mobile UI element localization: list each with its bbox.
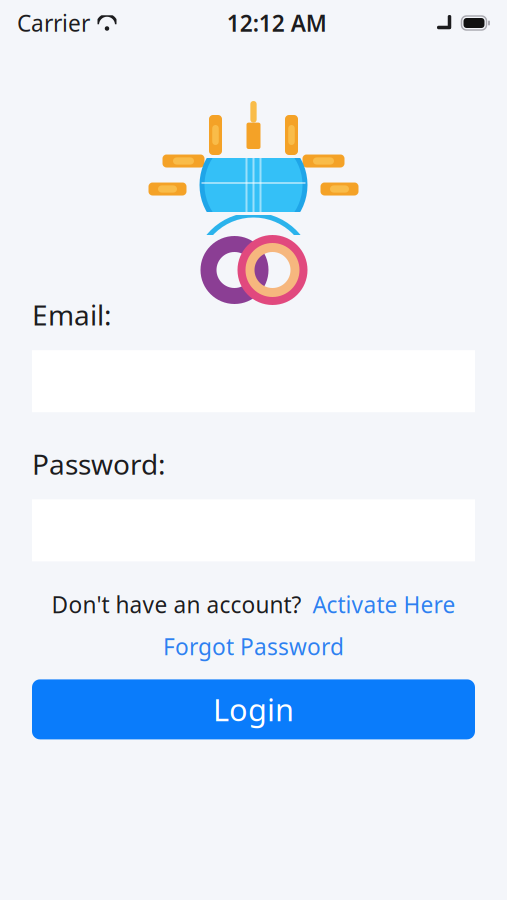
staticText: Password:: [32, 445, 166, 482]
staticText: Forgot Password: [163, 631, 344, 661]
staticText: Don't have an account?: [51, 589, 301, 619]
button[interactable]: Forgot Password: [163, 634, 344, 658]
staticText: Activate Here: [312, 589, 455, 619]
button[interactable]: Activate Here: [312, 589, 455, 619]
staticText: Login: [213, 689, 294, 730]
staticText: Email:: [32, 296, 112, 333]
button[interactable]: Login: [32, 679, 475, 739]
staticText: Carrier: [17, 8, 90, 38]
staticText: 12:12 AM: [227, 8, 327, 38]
